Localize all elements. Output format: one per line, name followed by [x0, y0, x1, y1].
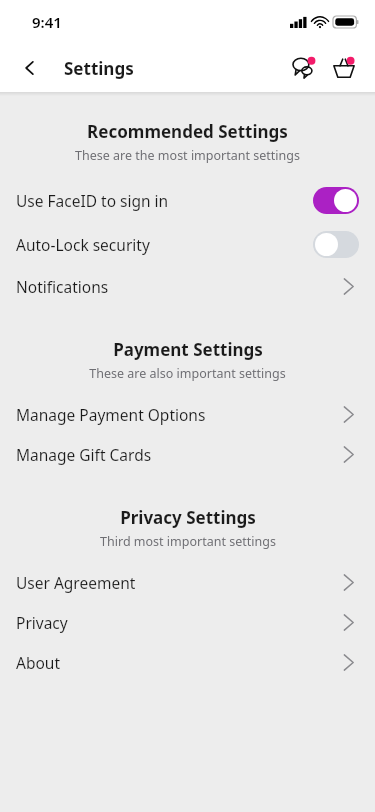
button[interactable]: Auto-Lock security: [0, 222, 375, 266]
button[interactable]: Messages: [287, 51, 321, 85]
staticText: About: [16, 652, 60, 673]
staticText: Manage Gift Cards: [16, 444, 152, 465]
button[interactable]: About: [0, 642, 375, 682]
staticText: Auto-Lock security: [16, 234, 150, 255]
staticText: User Agreement: [16, 572, 136, 593]
staticText: Recommended Settings: [87, 120, 288, 143]
staticText: These are also important settings: [89, 365, 286, 382]
button[interactable]: Manage Payment Options: [0, 394, 375, 434]
button[interactable]: Notifications: [0, 266, 375, 306]
button[interactable]: Manage Gift Cards: [0, 434, 375, 474]
staticText: Manage Payment Options: [16, 404, 206, 425]
button[interactable]: Basket: [327, 51, 361, 85]
button[interactable]: Use FaceID to sign in: [0, 178, 375, 222]
button[interactable]: Privacy: [0, 602, 375, 642]
button[interactable]: Back: [10, 48, 50, 88]
staticText: Third most important settings: [100, 533, 276, 550]
button[interactable]: User Agreement: [0, 562, 375, 602]
staticText: Use FaceID to sign in: [16, 190, 169, 211]
staticText: These are the most important settings: [75, 147, 300, 164]
staticText: Notifications: [16, 276, 109, 297]
staticText: Privacy: [16, 612, 68, 633]
staticText: 9:41: [32, 12, 62, 32]
staticText: Privacy Settings: [120, 506, 256, 529]
staticText: Settings: [64, 57, 134, 80]
staticText: Payment Settings: [113, 338, 263, 361]
